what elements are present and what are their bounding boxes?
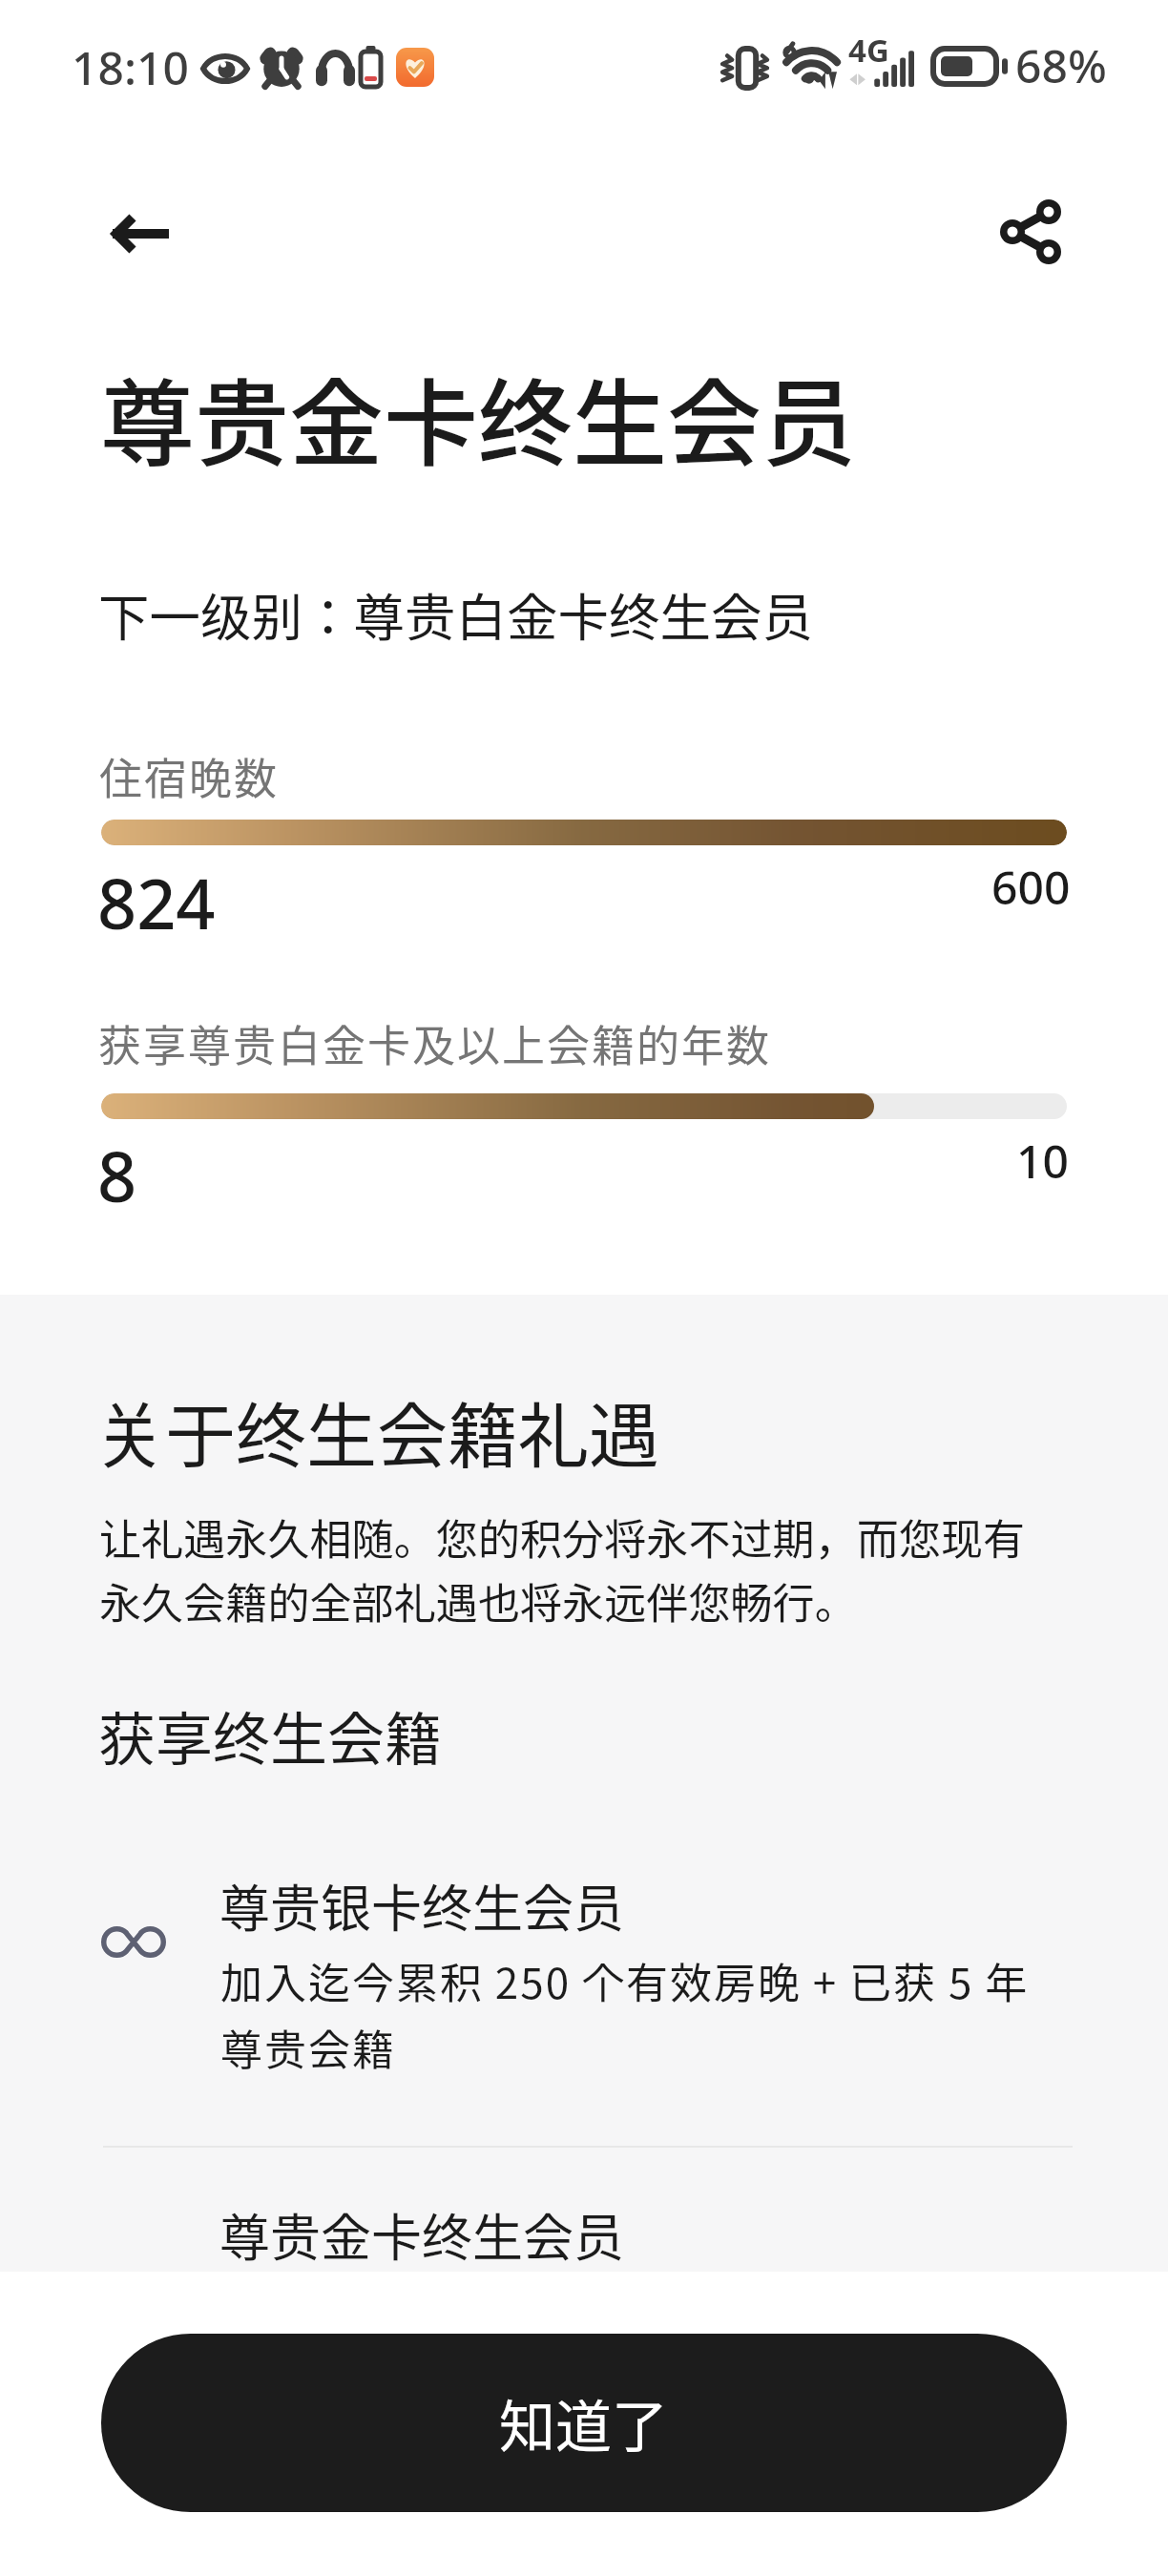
staticText: 下一级别：尊贵白金卡终生会员 (98, 577, 813, 651)
staticText: 知道了 (499, 2382, 669, 2463)
staticText: 4G (848, 29, 889, 72)
button[interactable]: Back (87, 180, 194, 287)
staticText: 住宿晚数 (99, 745, 280, 807)
staticText: 68% (1015, 34, 1107, 96)
staticText: 尊贵银卡终生会员 (219, 1869, 624, 1942)
staticText: 18:10 (72, 36, 189, 98)
staticText: 获享终生会籍 (98, 1693, 442, 1776)
staticText: 824 (97, 856, 216, 949)
staticText: 让礼遇永久相随。您的积分将永不过期，而您现有 永久会籍的全部礼遇也将永远伴您畅行… (99, 1506, 1026, 1631)
staticText: 关于终生会籍礼遇 (94, 1380, 659, 1482)
button[interactable]: 尊贵金卡终生会员 (101, 2156, 1067, 2272)
staticText: 8 (97, 1129, 137, 1222)
button[interactable]: Share (977, 178, 1084, 285)
staticText: 尊贵金卡终生会员 (100, 348, 856, 485)
staticText: 10 (1016, 1130, 1069, 1192)
button[interactable]: 尊贵银卡终生会员 (101, 1841, 1067, 2128)
button[interactable]: 知道了 (101, 2334, 1067, 2512)
staticText: 尊贵金卡终生会员 (219, 2198, 624, 2272)
staticText: 获享尊贵白金卡及以上会籍的年数 (98, 1012, 772, 1074)
staticText: 600 (991, 856, 1071, 918)
staticText: 加入迄今累积 250 个有效房晚 + 已获 5 年 尊贵会籍 (220, 1950, 1030, 2078)
